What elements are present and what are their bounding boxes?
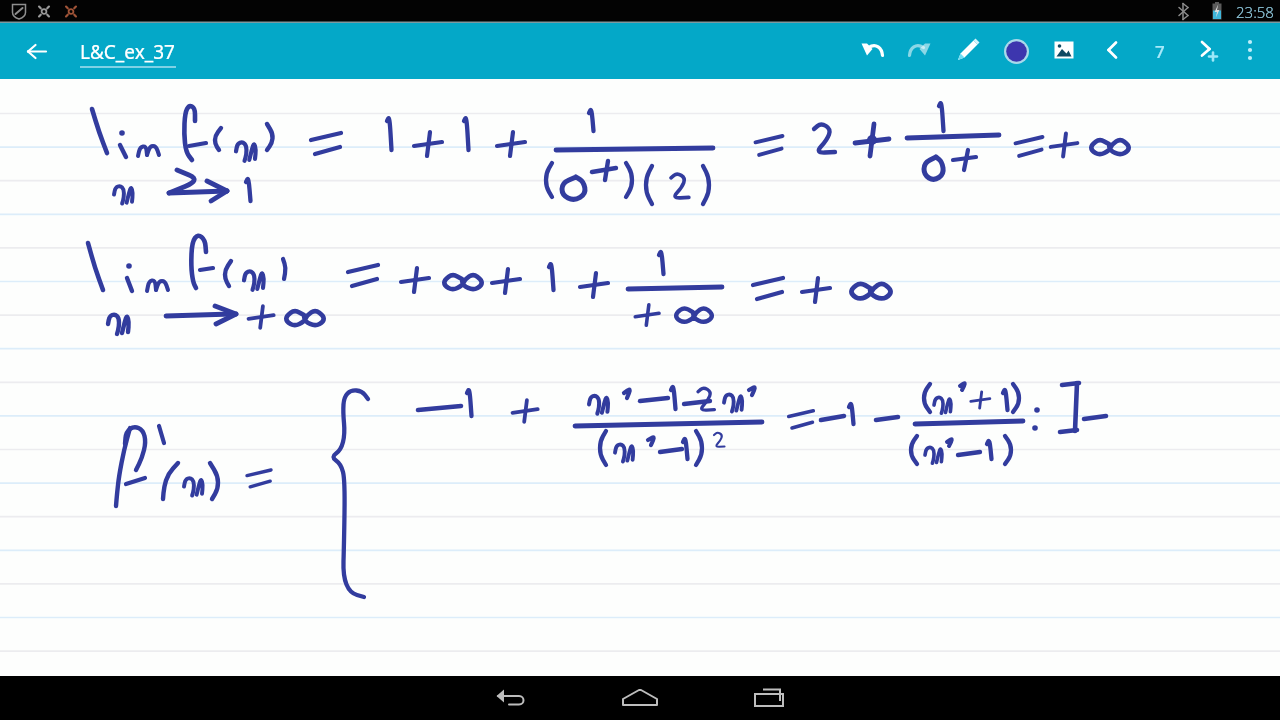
- button[interactable]: Insert image: [1042, 28, 1086, 72]
- button[interactable]: Add page: [1186, 28, 1230, 72]
- button[interactable]: Page number: [1138, 29, 1182, 73]
- button[interactable]: Undo: [850, 28, 894, 72]
- staticText: 7: [1155, 40, 1165, 63]
- staticText: L&C_ex_37: [80, 39, 175, 65]
- button[interactable]: Pen: [946, 28, 990, 72]
- button[interactable]: Previous page: [1090, 28, 1134, 72]
- button[interactable]: Redo: [898, 28, 942, 72]
- button[interactable]: Recent apps: [731, 676, 807, 720]
- button[interactable]: More options: [1228, 28, 1272, 72]
- button[interactable]: Back: [473, 676, 549, 720]
- staticText: 23:58: [1236, 2, 1274, 22]
- button[interactable]: L&C_ex_37: [80, 39, 176, 68]
- button[interactable]: Pen colour: [994, 29, 1038, 73]
- button[interactable]: Back: [16, 30, 58, 72]
- button[interactable]: Home: [602, 676, 678, 720]
